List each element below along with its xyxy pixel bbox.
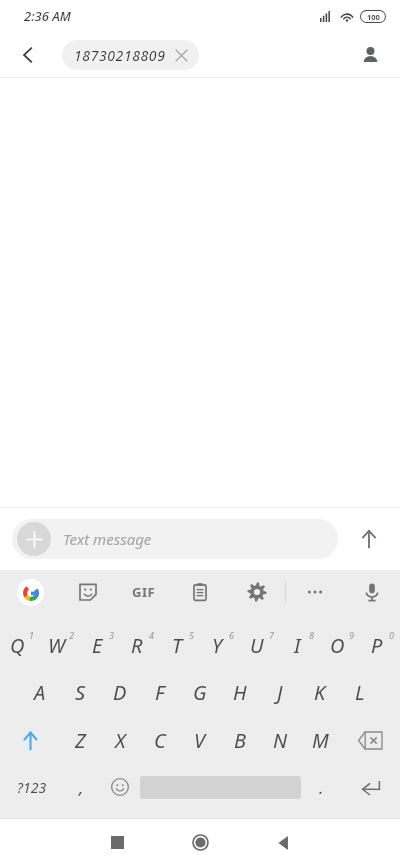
staticText: Q [10,632,25,659]
staticText: R [131,632,143,659]
staticText: ?123 [17,778,47,797]
staticText: . [319,776,324,799]
button[interactable]: V [180,716,220,764]
staticText: Z [75,727,86,754]
staticText: L [355,679,365,706]
button[interactable]: R [120,620,160,668]
button[interactable]: U [240,620,280,668]
staticText: C [154,727,166,754]
staticText: 4 [149,629,154,641]
button[interactable]: Voice input [343,570,400,614]
button[interactable]: Contact details [352,37,388,73]
button[interactable]: Send [338,515,400,563]
staticText: 0 [389,629,394,641]
button[interactable]: Home [159,819,242,866]
button[interactable]: Q [0,620,40,668]
button[interactable]: Recent apps [76,819,159,866]
button[interactable]: S [60,668,100,716]
staticText: F [155,679,165,706]
button[interactable]: L [340,668,380,716]
button[interactable]: Back [10,37,46,73]
staticText: V [194,727,206,754]
staticText: P [371,632,383,659]
button[interactable]: N [260,716,300,764]
button[interactable]: Z [60,716,100,764]
button[interactable]: Enter [341,764,400,810]
staticText: G [193,679,207,706]
staticText: GIF [132,583,156,601]
staticText: 2 [69,629,74,641]
staticText: M [312,727,329,754]
button[interactable]: B [220,716,260,764]
staticText: 18730218809 [74,46,166,65]
button[interactable]: K [300,668,340,716]
staticText: I [294,632,301,659]
button[interactable]: Comma [63,764,100,810]
staticText: , [79,776,84,799]
staticText: 8 [309,629,314,641]
button[interactable]: T [160,620,200,668]
button[interactable]: Y [200,620,240,668]
button[interactable]: Clipboard [172,570,228,614]
button[interactable]: Stickers [60,570,116,614]
staticText: A [34,679,46,706]
button[interactable]: X [100,716,140,764]
button[interactable]: 18730218809 [62,40,199,70]
staticText: X [115,727,126,754]
button[interactable]: Settings [228,570,285,614]
button[interactable]: Google search [0,570,60,614]
button[interactable]: ?123 [0,764,63,810]
button[interactable]: Period [301,764,341,810]
staticText: E [92,632,103,659]
staticText: D [113,679,127,706]
button[interactable]: P [360,620,400,668]
staticText: J [277,679,283,706]
staticText: Y [212,632,223,659]
button[interactable]: J [260,668,300,716]
button[interactable]: I [280,620,320,668]
staticText: T [172,632,183,659]
staticText: 3 [109,629,114,641]
staticText: 2:36 AM [24,7,71,25]
staticText: 9 [349,629,354,641]
staticText: K [314,679,326,706]
staticText: W [48,632,66,659]
staticText: H [233,679,247,706]
button[interactable]: G [180,668,220,716]
button[interactable]: More options [286,570,343,614]
button[interactable]: GIF [116,570,172,614]
button[interactable]: F [140,668,180,716]
button[interactable]: Back [242,819,325,866]
button[interactable]: C [140,716,180,764]
button[interactable]: E [80,620,120,668]
button[interactable]: Space [140,764,301,810]
button[interactable]: Shift [0,716,60,764]
staticText: Text message [63,529,152,549]
staticText: O [330,632,345,659]
staticText: 6 [229,629,234,641]
staticText: S [75,679,86,706]
staticText: 7 [269,629,274,641]
staticText: 5 [189,629,194,641]
button[interactable]: W [40,620,80,668]
button[interactable]: O [320,620,360,668]
staticText: 1 [29,629,34,641]
button[interactable]: Text message [12,519,338,559]
button[interactable]: M [300,716,340,764]
staticText: U [250,632,264,659]
staticText: 100 [367,12,380,22]
button[interactable]: A [20,668,60,716]
button[interactable]: D [100,668,140,716]
staticText: B [234,727,246,754]
staticText: N [273,727,288,754]
button[interactable]: H [220,668,260,716]
button[interactable]: Emoji [100,764,140,810]
button[interactable]: Backspace [340,716,400,764]
